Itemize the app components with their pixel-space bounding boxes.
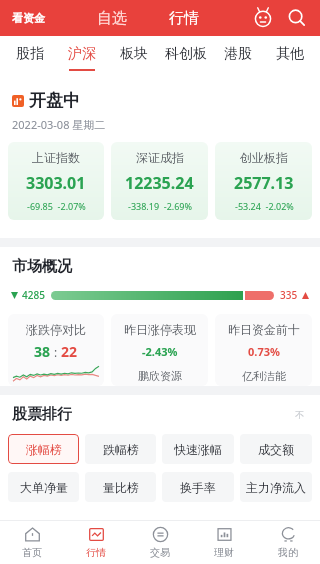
- staticText: 理财: [214, 546, 234, 559]
- staticText: 12235.24: [125, 172, 194, 194]
- staticText: 335: [280, 288, 298, 302]
- button[interactable]: 量比榜: [85, 472, 156, 502]
- staticText: 2577.13: [234, 172, 294, 194]
- staticText: 鹏欣资源: [138, 369, 182, 383]
- staticText: 跌幅榜: [103, 442, 139, 457]
- staticText: 昨日涨停表现: [124, 322, 196, 337]
- button[interactable]: 跌幅榜: [85, 434, 156, 464]
- staticText: 创业板指: [240, 150, 288, 165]
- button[interactable]: 昨日涨停表现: [111, 314, 208, 386]
- button[interactable]: 主力净流入: [240, 472, 312, 502]
- button[interactable]: 快速涨幅: [162, 434, 234, 464]
- staticText: 行情: [86, 546, 106, 559]
- staticText: 昨日资金前十: [228, 322, 300, 337]
- staticText: 开盘中: [29, 90, 80, 111]
- button[interactable]: 交易: [128, 521, 192, 564]
- staticText: 3303.01: [26, 172, 86, 194]
- staticText: 科创板: [165, 45, 207, 63]
- staticText: -69.85 -2.07%: [27, 200, 86, 212]
- button[interactable]: 不: [291, 405, 308, 424]
- staticText: 主力净流入: [246, 480, 306, 495]
- button[interactable]: 板块: [108, 36, 160, 80]
- button[interactable]: 成交额: [240, 434, 312, 464]
- staticText: 换手率: [180, 480, 216, 495]
- staticText: 亿利洁能: [242, 369, 286, 383]
- button[interactable]: 看资金: [10, 7, 47, 29]
- staticText: 我的: [278, 546, 298, 559]
- staticText: 大单净量: [20, 480, 68, 495]
- button[interactable]: 涨幅榜: [8, 434, 79, 464]
- staticText: 快速涨幅: [174, 442, 222, 457]
- staticText: 涨幅榜: [26, 442, 62, 457]
- staticText: 2022-03-08 星期二: [12, 117, 106, 132]
- button[interactable]: 沪深: [56, 36, 108, 80]
- staticText: 交易: [150, 546, 170, 559]
- staticText: 看资金: [12, 11, 45, 25]
- button[interactable]: 股指: [4, 36, 56, 80]
- button[interactable]: 科创板: [160, 36, 212, 80]
- button[interactable]: 换手率: [162, 472, 234, 502]
- staticText: 上证指数: [32, 150, 80, 165]
- staticText: -53.24 -2.02%: [235, 200, 294, 212]
- staticText: 22: [61, 342, 78, 361]
- staticText: 0.73%: [248, 344, 280, 359]
- staticText: 深证成指: [136, 150, 184, 165]
- staticText: 涨跌停对比: [26, 322, 86, 337]
- staticText: 市场概况: [12, 257, 72, 276]
- button[interactable]: 深证成指: [111, 142, 208, 220]
- staticText: 量比榜: [103, 480, 139, 495]
- staticText: 沪深: [68, 45, 96, 63]
- staticText: 股票排行: [12, 405, 72, 424]
- button[interactable]: 大单净量: [8, 472, 79, 502]
- button[interactable]: 涨跌停对比: [8, 314, 104, 386]
- button[interactable]: 创业板指: [215, 142, 312, 220]
- staticText: 成交额: [258, 442, 294, 457]
- button[interactable]: 智能助手: [250, 5, 276, 31]
- staticText: 38: [34, 342, 51, 361]
- button[interactable]: 上证指数: [8, 142, 104, 220]
- staticText: 4285: [22, 288, 45, 302]
- button[interactable]: 昨日资金前十: [215, 314, 312, 386]
- button[interactable]: 首页: [0, 521, 64, 564]
- staticText: 自选: [97, 9, 127, 28]
- button[interactable]: 其他: [264, 36, 316, 80]
- staticText: 不: [295, 409, 304, 420]
- button[interactable]: 搜索: [284, 5, 310, 31]
- staticText: 股指: [16, 45, 44, 63]
- button[interactable]: 自选: [89, 5, 135, 32]
- button[interactable]: 港股: [212, 36, 264, 80]
- staticText: :: [51, 344, 61, 360]
- button[interactable]: 行情: [64, 521, 128, 564]
- staticText: 行情: [169, 9, 199, 28]
- staticText: 板块: [120, 45, 148, 63]
- staticText: 港股: [224, 45, 252, 63]
- button[interactable]: 行情: [161, 5, 207, 32]
- staticText: -2.43%: [142, 344, 178, 359]
- button[interactable]: 我的: [256, 521, 320, 564]
- button[interactable]: 理财: [192, 521, 256, 564]
- staticText: 首页: [22, 546, 42, 559]
- staticText: 其他: [276, 45, 304, 63]
- staticText: -338.19 -2.69%: [128, 200, 192, 212]
